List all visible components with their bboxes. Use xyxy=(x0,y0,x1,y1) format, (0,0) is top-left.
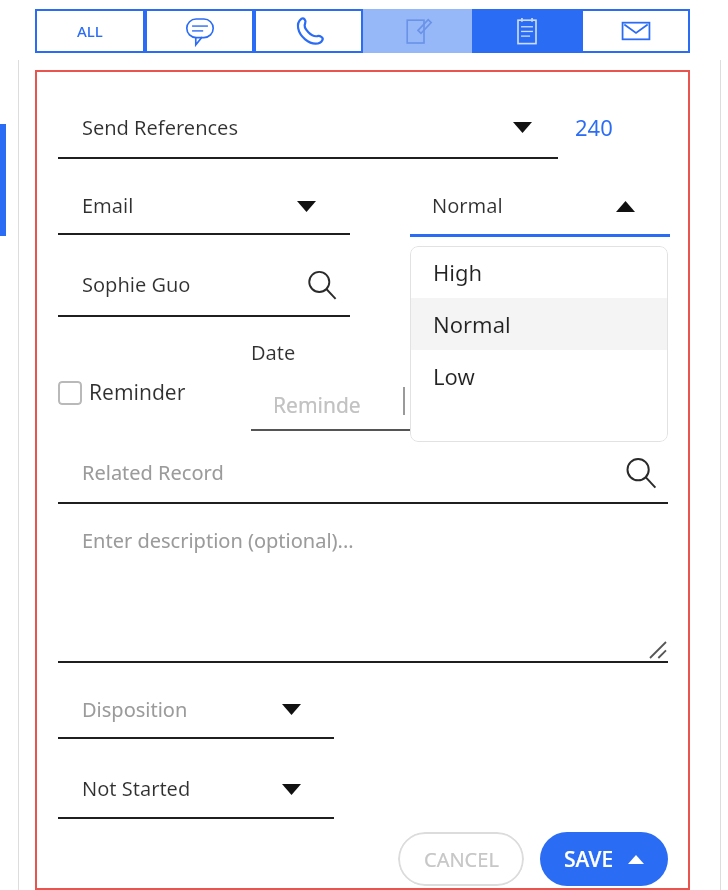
button[interactable]: High xyxy=(410,246,668,298)
staticText: Enter description (optional)... xyxy=(82,527,354,554)
button[interactable]: Search contact xyxy=(302,266,342,306)
button[interactable]: Reminder xyxy=(58,378,186,407)
button[interactable]: Tasks xyxy=(472,9,581,53)
staticText: Normal xyxy=(432,192,503,219)
button[interactable]: Low xyxy=(410,350,668,402)
button[interactable]: Send References xyxy=(82,114,238,141)
staticText: Low xyxy=(433,361,475,391)
staticText: Disposition xyxy=(82,696,188,723)
button[interactable]: All xyxy=(35,9,145,53)
button[interactable]: Email xyxy=(581,9,690,53)
button[interactable]: Calls xyxy=(254,9,363,53)
button[interactable]: Search related record xyxy=(620,453,662,495)
staticText: Related Record xyxy=(82,459,224,486)
button[interactable]: Messages xyxy=(145,9,254,53)
staticText: Send References xyxy=(82,114,238,141)
button[interactable]: Open status menu xyxy=(279,782,303,796)
staticText: Email xyxy=(82,192,134,219)
button[interactable]: Open type menu xyxy=(510,120,534,134)
staticText: Date xyxy=(251,339,296,366)
staticText: Reminde xyxy=(273,391,361,420)
button[interactable]: Close priority menu xyxy=(613,199,637,213)
button[interactable]: CANCEL xyxy=(398,832,524,886)
staticText: ALL xyxy=(77,21,103,41)
button[interactable]: Email xyxy=(82,192,134,219)
button[interactable] xyxy=(58,510,668,660)
staticText: 240 xyxy=(575,112,613,142)
staticText: High xyxy=(433,257,483,287)
staticText: Normal xyxy=(433,309,511,339)
staticText: CANCEL xyxy=(424,846,499,873)
staticText: Reminder xyxy=(89,378,186,407)
button[interactable]: Open disposition menu xyxy=(279,702,303,716)
button[interactable]: SAVE xyxy=(540,832,668,886)
staticText: Sophie Guo xyxy=(82,271,191,298)
button[interactable]: Normal xyxy=(432,192,503,219)
button[interactable]: Notes xyxy=(363,9,472,53)
staticText: Not Started xyxy=(82,775,191,802)
button[interactable]: Normal xyxy=(410,298,668,350)
button[interactable]: Open channel menu xyxy=(294,199,318,213)
staticText: SAVE xyxy=(564,845,614,874)
